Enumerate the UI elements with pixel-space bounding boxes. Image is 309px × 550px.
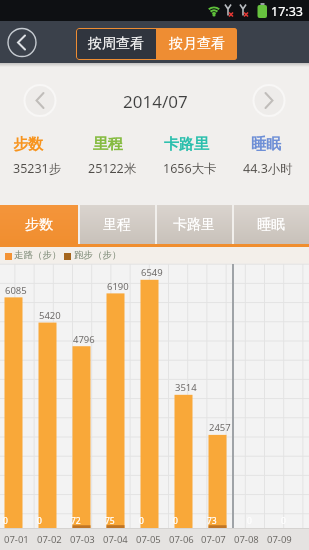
- staticText: 25122米: [88, 160, 137, 177]
- staticText: 0: [281, 515, 286, 527]
- staticText: 17:33: [271, 3, 303, 20]
- staticText: 07-07: [201, 533, 226, 546]
- button[interactable]: 里程: [78, 205, 155, 244]
- staticText: 07-03: [70, 533, 95, 546]
- staticText: 44.3小时: [243, 160, 293, 177]
- staticText: 卡路里: [164, 135, 209, 154]
- staticText: 75: [105, 515, 115, 527]
- button[interactable]: [0, 21, 44, 63]
- staticText: 2457: [209, 421, 231, 434]
- staticText: 07-02: [37, 533, 62, 546]
- staticText: 07-05: [136, 533, 161, 546]
- staticText: 睡眠: [251, 135, 281, 154]
- staticText: 0: [37, 515, 42, 527]
- staticText: 72: [71, 515, 81, 527]
- staticText: 里程: [93, 135, 123, 154]
- staticText: 步数: [13, 135, 43, 154]
- staticText: 0: [247, 515, 252, 527]
- button[interactable]: 按周查看: [76, 28, 156, 60]
- staticText: 按周查看: [88, 35, 144, 53]
- staticText: 1656大卡: [163, 160, 217, 177]
- button[interactable]: 卡路里: [155, 205, 232, 244]
- staticText: 07-06: [169, 533, 194, 546]
- staticText: 走路（步）: [14, 249, 62, 261]
- staticText: 按月查看: [169, 35, 225, 53]
- staticText: 07-01: [4, 533, 29, 546]
- staticText: 6085: [5, 284, 27, 297]
- staticText: 步数: [25, 216, 53, 234]
- button[interactable]: 睡眠: [232, 205, 309, 244]
- button[interactable]: 按月查看: [156, 28, 237, 60]
- staticText: 73: [207, 515, 217, 527]
- staticText: 2014/07: [123, 90, 188, 113]
- staticText: 0: [173, 515, 178, 527]
- staticText: 6549: [141, 266, 163, 279]
- staticText: 35231步: [13, 160, 62, 177]
- staticText: 07-09: [267, 533, 292, 546]
- staticText: 3514: [175, 381, 197, 394]
- staticText: 0: [139, 515, 144, 527]
- staticText: 跑步（步）: [74, 249, 122, 261]
- staticText: 07-08: [234, 533, 259, 546]
- button[interactable]: 步数: [0, 205, 78, 244]
- staticText: 07-04: [103, 533, 128, 546]
- staticText: 4796: [73, 333, 95, 346]
- button[interactable]: [239, 85, 299, 117]
- staticText: 0: [3, 515, 8, 527]
- staticText: 6190: [107, 280, 129, 293]
- staticText: 里程: [103, 216, 131, 234]
- button[interactable]: [10, 85, 70, 117]
- staticText: 5420: [39, 309, 61, 322]
- staticText: 卡路里: [173, 216, 215, 234]
- staticText: 睡眠: [257, 216, 285, 234]
